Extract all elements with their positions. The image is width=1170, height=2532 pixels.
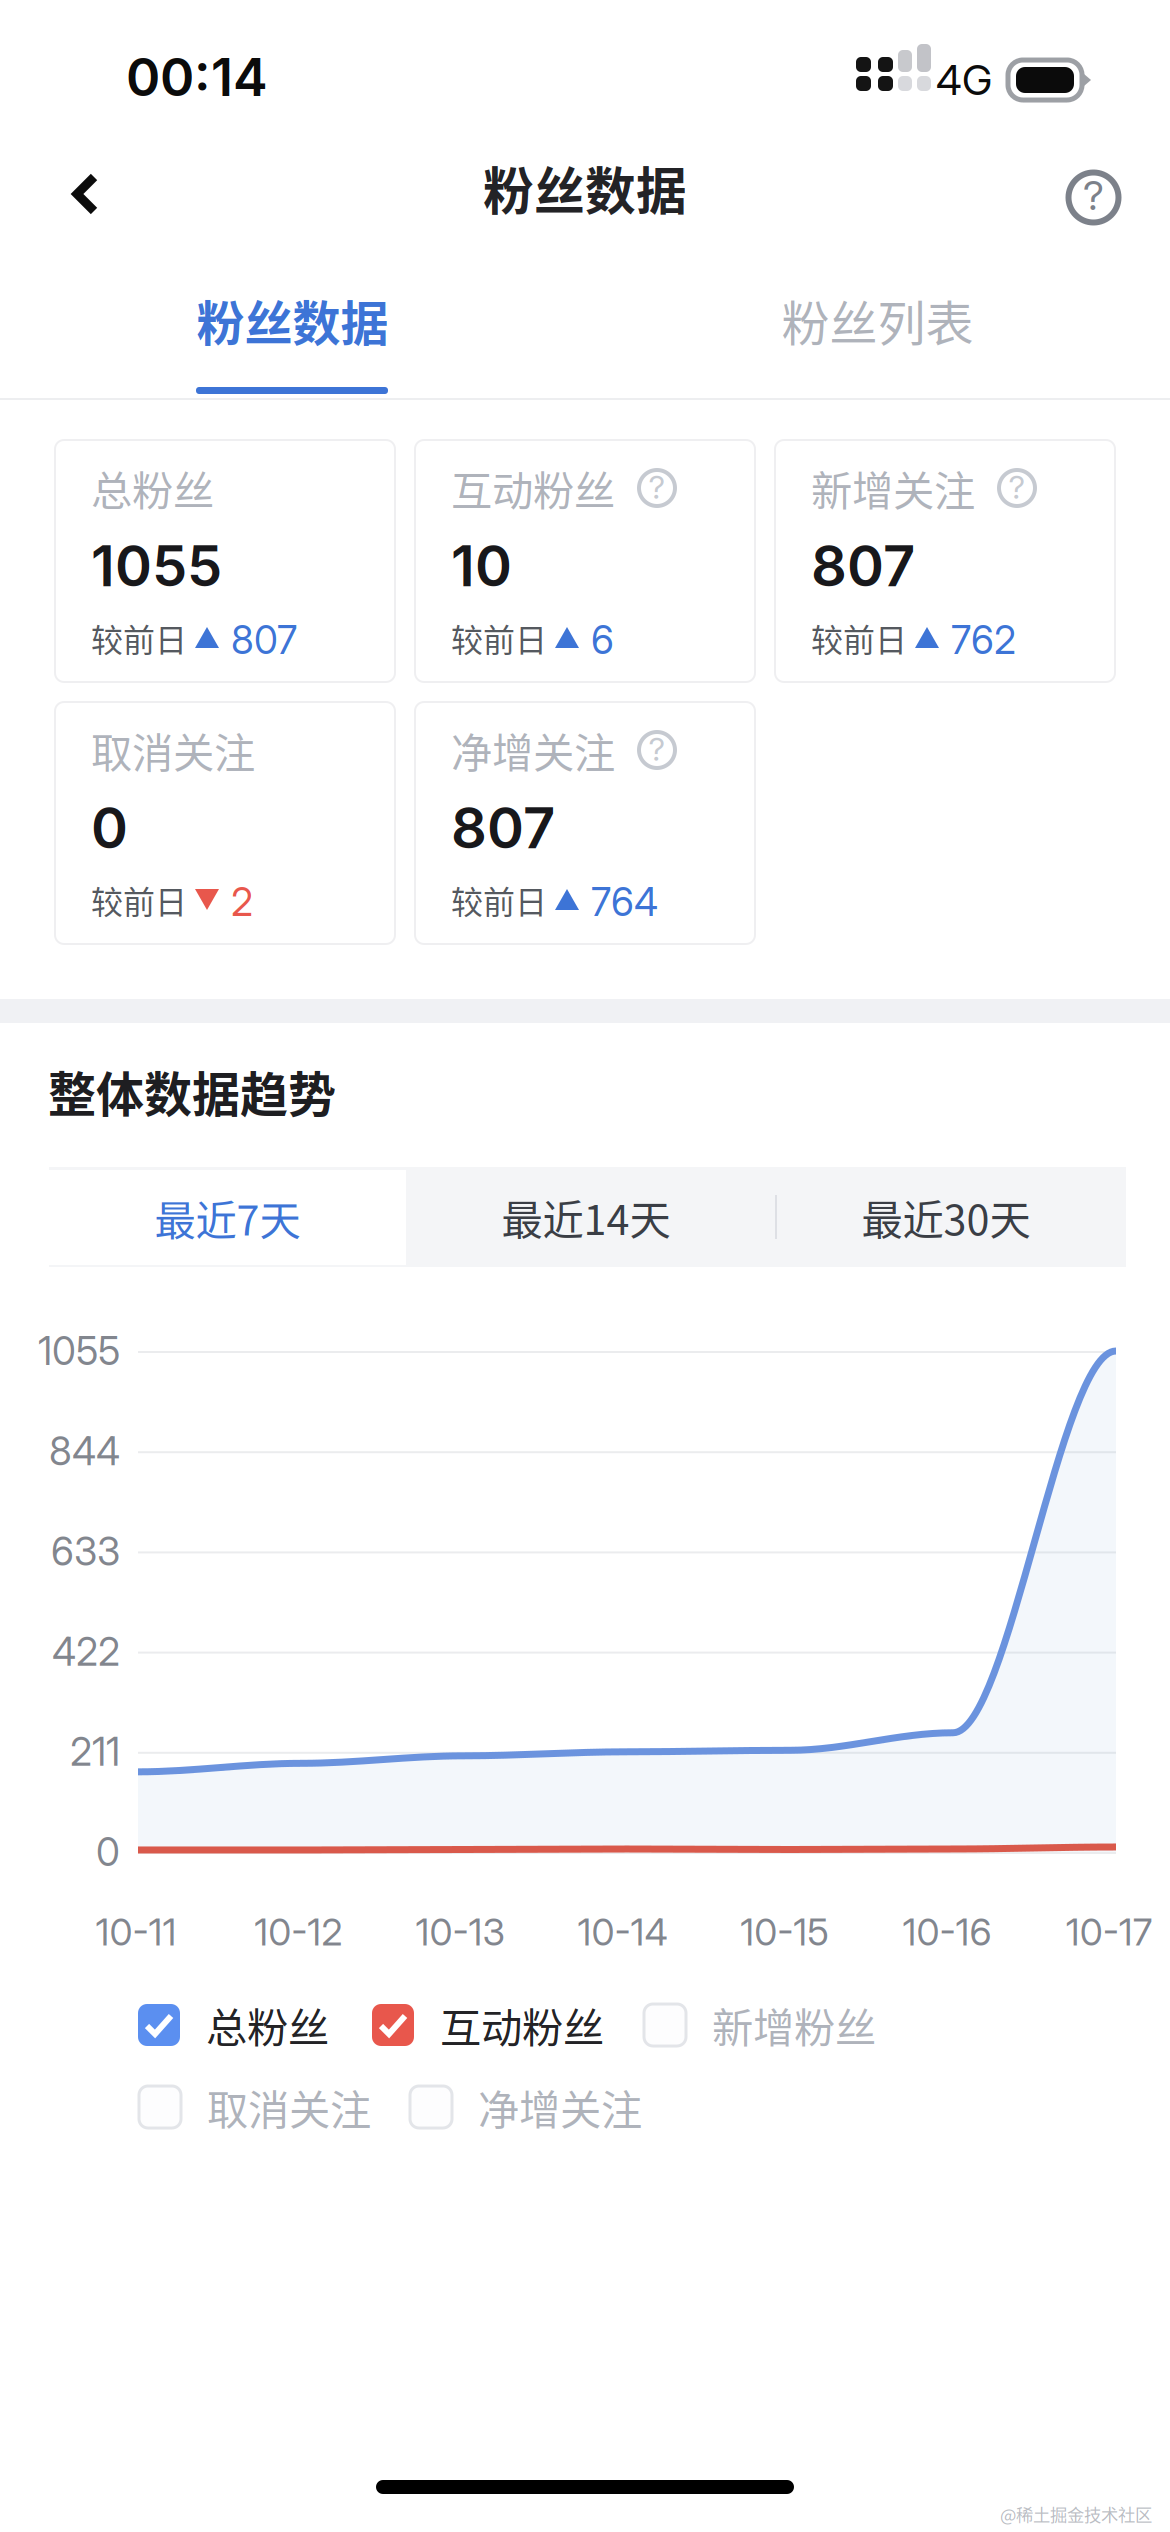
- staticText: 10-17: [1066, 1909, 1153, 1955]
- staticText: 总粉丝: [206, 1995, 329, 2055]
- staticText: ?: [1008, 468, 1025, 506]
- button[interactable]: 最近30天: [766, 1167, 1126, 1267]
- staticText: 较前日: [91, 615, 187, 661]
- staticText: 粉丝数据: [483, 151, 687, 225]
- staticText: 净增关注: [478, 2077, 642, 2137]
- staticText: 422: [52, 1628, 120, 1675]
- staticText: 粉丝列表: [781, 285, 973, 355]
- staticText: ?: [648, 730, 665, 768]
- staticText: 0: [96, 1829, 120, 1875]
- staticText: 较前日: [451, 877, 547, 923]
- staticText: 取消关注: [207, 2077, 371, 2137]
- button[interactable]: 取消关注: [139, 2076, 407, 2138]
- staticText: 633: [51, 1528, 120, 1575]
- button[interactable]: 最近7天: [49, 1170, 406, 1265]
- staticText: 762: [951, 617, 1016, 663]
- staticText: ?: [1083, 171, 1104, 220]
- button[interactable]: 粉丝列表: [585, 248, 1170, 400]
- staticText: 4G: [936, 55, 992, 105]
- staticText: 互动粉丝: [440, 1995, 604, 2055]
- staticText: 最近14天: [501, 1187, 670, 1247]
- staticText: @稀土掘金技术社区: [1000, 2501, 1152, 2527]
- button[interactable]: 新增关注: [775, 440, 1115, 682]
- staticText: 10-12: [254, 1909, 342, 1955]
- staticText: 6: [591, 617, 614, 663]
- staticText: 00:14: [126, 45, 268, 108]
- button[interactable]: 互动粉丝: [415, 440, 755, 682]
- staticText: 较前日: [91, 877, 187, 923]
- button[interactable]: 最近14天: [406, 1167, 766, 1267]
- staticText: ?: [648, 468, 665, 506]
- button[interactable]: Help: [1018, 128, 1170, 248]
- staticText: 807: [231, 617, 297, 663]
- staticText: 807: [811, 532, 915, 600]
- staticText: 整体数据趋势: [48, 1056, 336, 1126]
- button[interactable]: 净增关注: [410, 2076, 678, 2138]
- staticText: 10: [451, 532, 512, 600]
- button[interactable]: 新增粉丝: [644, 1994, 912, 2056]
- button[interactable]: 净增关注: [415, 702, 755, 944]
- staticText: 211: [70, 1728, 120, 1775]
- staticText: 764: [591, 879, 658, 925]
- staticText: 最近30天: [861, 1187, 1030, 1247]
- staticText: 1055: [38, 1328, 120, 1374]
- staticText: 粉丝数据: [196, 285, 388, 355]
- staticText: 取消关注: [91, 720, 255, 780]
- staticText: 新增粉丝: [712, 1995, 876, 2055]
- staticText: 2: [231, 879, 253, 925]
- staticText: 1055: [91, 532, 222, 600]
- staticText: 净增关注: [451, 720, 615, 780]
- button[interactable]: 粉丝数据: [0, 248, 585, 400]
- staticText: 10-16: [902, 1909, 991, 1955]
- staticText: 0: [91, 794, 128, 862]
- staticText: 10-14: [578, 1909, 668, 1955]
- button[interactable]: Back: [0, 128, 142, 248]
- button[interactable]: 总粉丝: [138, 1994, 406, 2056]
- staticText: 807: [451, 794, 555, 862]
- button[interactable]: 总粉丝: [55, 440, 395, 682]
- staticText: 10-11: [95, 1909, 176, 1955]
- staticText: 新增关注: [811, 458, 975, 518]
- staticText: 最近7天: [154, 1188, 300, 1247]
- staticText: 10-13: [415, 1909, 505, 1955]
- staticText: 较前日: [811, 615, 907, 661]
- staticText: 10-15: [740, 1909, 829, 1955]
- staticText: 较前日: [451, 615, 547, 661]
- button[interactable]: 互动粉丝: [372, 1994, 640, 2056]
- staticText: 844: [49, 1428, 120, 1475]
- staticText: 互动粉丝: [451, 458, 615, 518]
- staticText: 总粉丝: [91, 458, 214, 518]
- button[interactable]: 取消关注: [55, 702, 395, 944]
